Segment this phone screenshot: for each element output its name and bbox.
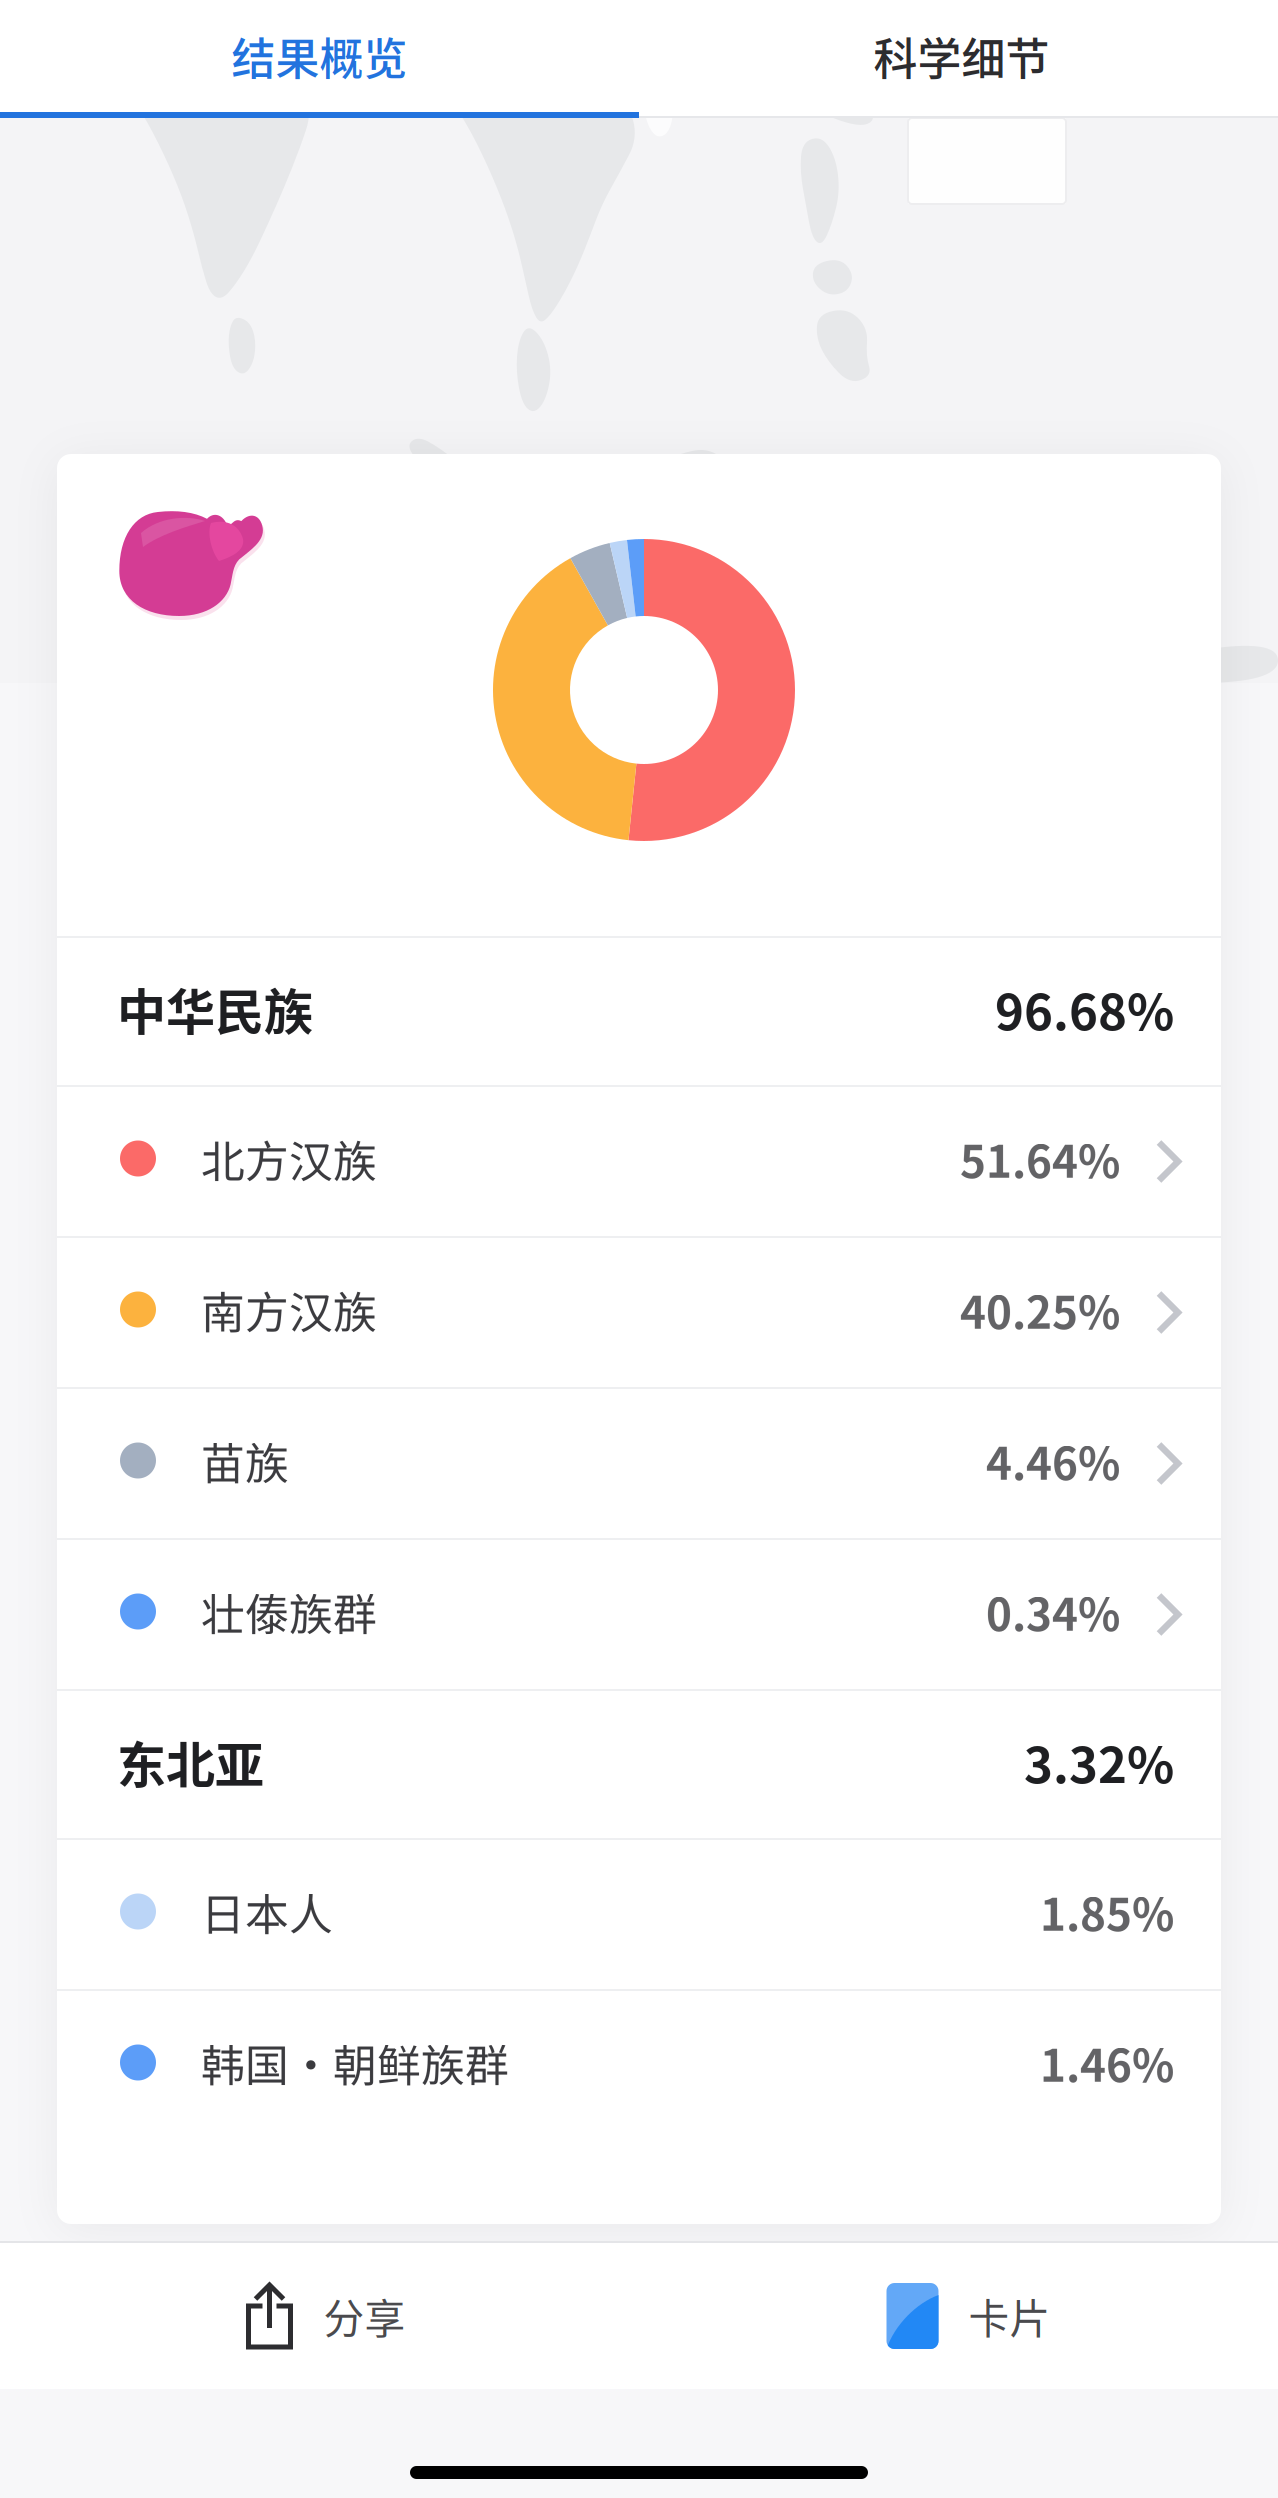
button[interactable]: 分享: [0, 2243, 639, 2389]
staticText: 科学细节: [873, 24, 1049, 88]
staticText: 40.25%: [960, 1278, 1120, 1341]
button[interactable]: 韩国·朝鲜族群: [57, 1991, 1221, 2140]
staticText: 日本人: [201, 1880, 333, 1943]
staticText: 南方汉族: [201, 1278, 377, 1341]
staticText: 壮傣族群: [201, 1580, 377, 1643]
staticText: 中华民族: [117, 973, 313, 1044]
staticText: 51.64%: [960, 1127, 1120, 1190]
button[interactable]: 苗族: [57, 1389, 1221, 1538]
staticText: 96.68%: [995, 973, 1174, 1044]
button[interactable]: 北方汉族: [57, 1087, 1221, 1236]
staticText: 4.46%: [986, 1429, 1120, 1492]
staticText: 0.34%: [986, 1580, 1120, 1643]
staticText: 3.32%: [1024, 1726, 1174, 1797]
button[interactable]: 科学细节: [639, 0, 1278, 118]
staticText: 结果概览: [231, 24, 407, 88]
staticText: 分享: [323, 2287, 405, 2345]
button[interactable]: 日本人: [57, 1840, 1221, 1989]
staticText: 苗族: [201, 1429, 289, 1492]
button[interactable]: 卡片: [639, 2243, 1278, 2389]
button[interactable]: 南方汉族: [57, 1238, 1221, 1387]
staticText: 韩国·朝鲜族群: [201, 2031, 509, 2094]
staticText: 1.85%: [1040, 1880, 1174, 1943]
button[interactable]: 壮傣族群: [57, 1540, 1221, 1689]
staticText: 卡片: [968, 2287, 1050, 2345]
staticText: 北方汉族: [201, 1127, 377, 1190]
button[interactable]: 结果概览: [0, 0, 639, 118]
staticText: 1.46%: [1040, 2031, 1174, 2094]
staticText: 东北亚: [117, 1726, 264, 1797]
